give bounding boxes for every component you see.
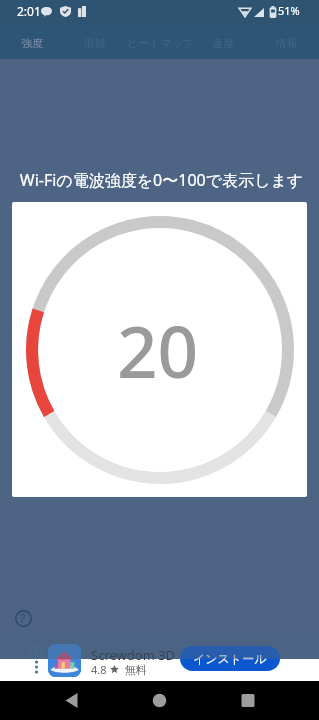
staticText: 4.8 — [91, 662, 107, 677]
staticText: ヒートマップ — [127, 36, 191, 50]
staticText: ? — [20, 610, 26, 626]
staticText: 51% — [278, 3, 300, 18]
staticText: 情報 — [276, 36, 298, 50]
button[interactable]: インストール — [180, 646, 280, 671]
button[interactable]: Help — [9, 604, 37, 632]
staticText: 20 — [117, 302, 199, 399]
staticText: 2:01 — [17, 3, 41, 19]
staticText: 速度 — [212, 36, 234, 50]
button[interactable]: 強度 — [0, 26, 63, 59]
staticText: 混雑 — [84, 36, 106, 50]
staticText: 強度 — [21, 36, 43, 50]
staticText: インストール — [193, 651, 267, 666]
staticText: Screwdom 3D — [91, 646, 176, 664]
button[interactable]: Screwdom 3D app icon — [48, 644, 81, 677]
button[interactable]: ヒートマップ — [127, 26, 191, 59]
staticText: 無料 — [125, 663, 147, 677]
staticText: Wi-Fiの電波強度を0〜100で表示します — [2, 169, 319, 191]
